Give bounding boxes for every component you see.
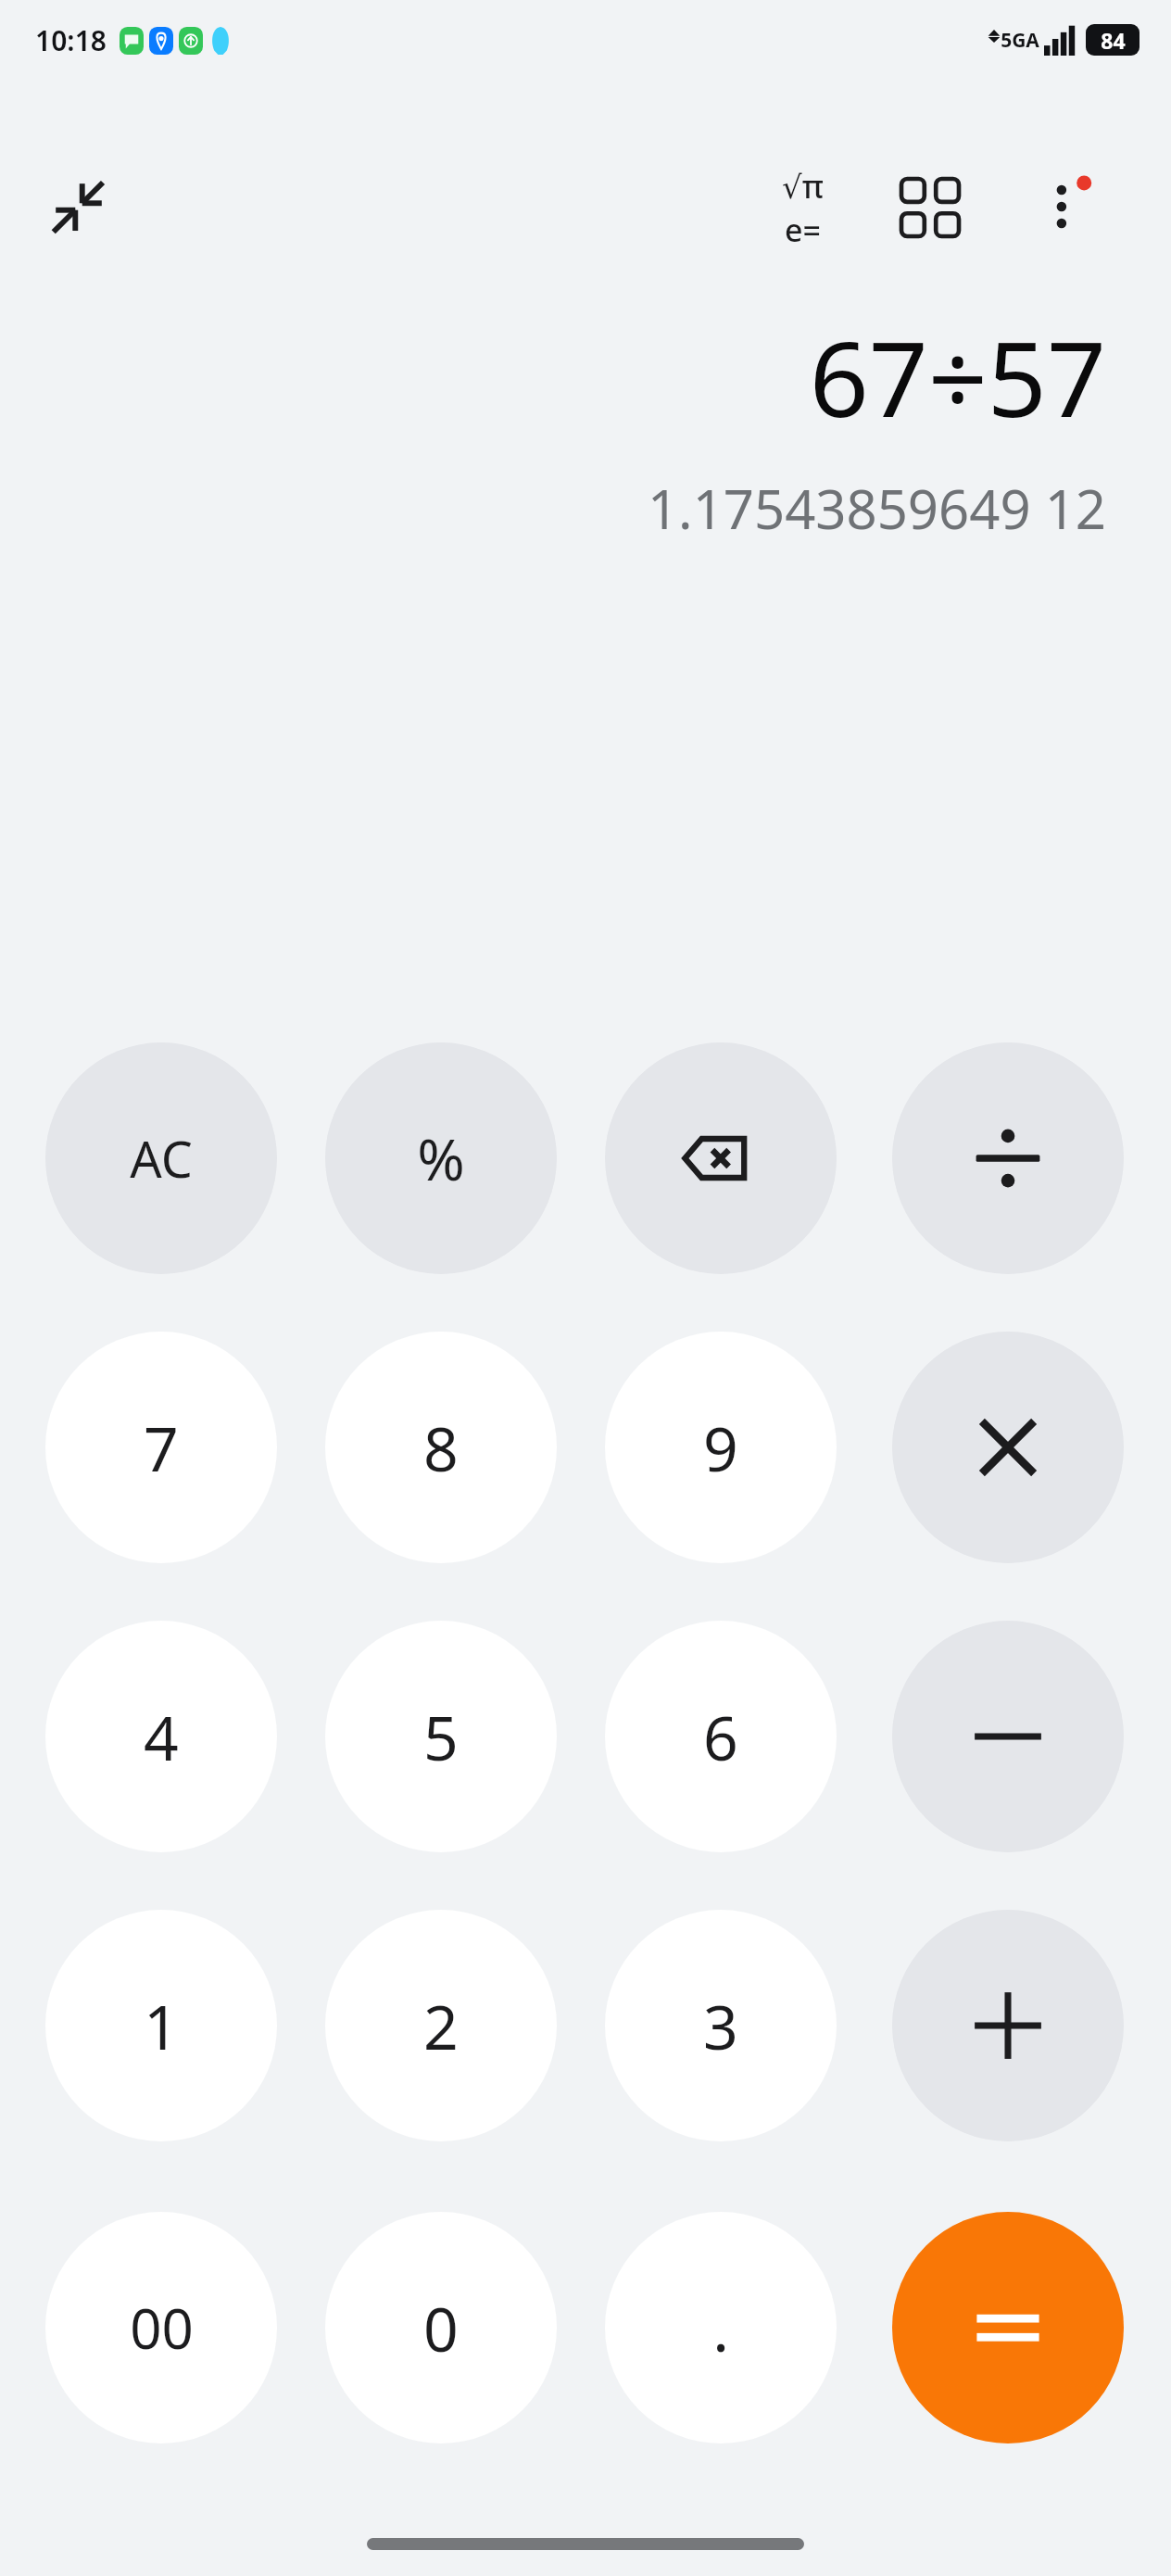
button[interactable]: % (325, 1042, 557, 1274)
staticText: 10:18 (35, 21, 107, 59)
button[interactable]: 3 (605, 1910, 837, 2141)
button[interactable]: 7 (45, 1332, 277, 1563)
button[interactable]: 8 (325, 1332, 557, 1563)
staticText: 6 (703, 1695, 738, 1778)
staticText: % (417, 1119, 465, 1197)
staticText: 3 (703, 1984, 738, 2067)
staticText: 0 (423, 2286, 459, 2369)
button[interactable]: Backspace (605, 1042, 837, 1274)
button[interactable]: 9 (605, 1332, 837, 1563)
button[interactable]: 00 (45, 2212, 277, 2443)
staticText: 7 (144, 1406, 179, 1489)
button[interactable]: Unit converter (880, 158, 980, 258)
button[interactable]: Multiply (892, 1332, 1124, 1563)
staticText: 67÷57 (809, 306, 1106, 448)
staticText: 1 (144, 1984, 179, 2067)
button[interactable]: 5 (325, 1621, 557, 1852)
staticText: AC (130, 1124, 193, 1193)
staticText: 5GA (1001, 27, 1039, 54)
staticText: 84 (1101, 26, 1126, 55)
button[interactable]: Scientific mode (752, 158, 852, 258)
staticText: 2 (423, 1984, 459, 2067)
staticText: 4 (144, 1695, 179, 1778)
button[interactable]: 2 (325, 1910, 557, 2141)
button[interactable]: . (605, 2212, 837, 2443)
staticText: 8 (423, 1406, 459, 1489)
button[interactable]: More options (1015, 156, 1117, 258)
button[interactable]: Divide (892, 1042, 1124, 1274)
button[interactable]: Minus (892, 1621, 1124, 1852)
button[interactable]: Collapse (28, 156, 130, 258)
button[interactable]: 1 (45, 1910, 277, 2141)
staticText: e= (785, 208, 821, 251)
button[interactable]: Equals (892, 2212, 1124, 2443)
staticText: √π (782, 165, 824, 208)
staticText: 00 (130, 2290, 194, 2366)
button[interactable]: 4 (45, 1621, 277, 1852)
button[interactable]: Plus (892, 1910, 1124, 2141)
staticText: 1.17543859649 12 (647, 472, 1106, 545)
button[interactable]: AC (45, 1042, 277, 1274)
staticText: . (712, 2286, 729, 2369)
button[interactable]: 0 (325, 2212, 557, 2443)
staticText: 5 (423, 1695, 459, 1778)
button[interactable]: 6 (605, 1621, 837, 1852)
staticText: 9 (703, 1406, 738, 1489)
